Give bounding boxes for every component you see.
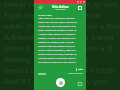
button[interactable]: Gallery <box>77 81 82 86</box>
staticText: shared this song <box>68 72 83 75</box>
button[interactable]: Lyrics <box>38 73 46 75</box>
staticText: gentle glow Nitin drew my anghem and the… <box>38 13 77 66</box>
staticText: 9:41 <box>36 0 41 3</box>
button[interactable]: Record <box>56 78 65 87</box>
staticText: Nitin Anthem <box>52 5 69 8</box>
button[interactable]: More options <box>77 5 83 11</box>
button[interactable]: Verified profile <box>37 4 44 11</box>
staticText: swear i'm not the same as you I got the … <box>4 0 120 89</box>
staticText: The Singer <box>55 8 66 11</box>
staticText: Nitin <box>78 68 83 71</box>
